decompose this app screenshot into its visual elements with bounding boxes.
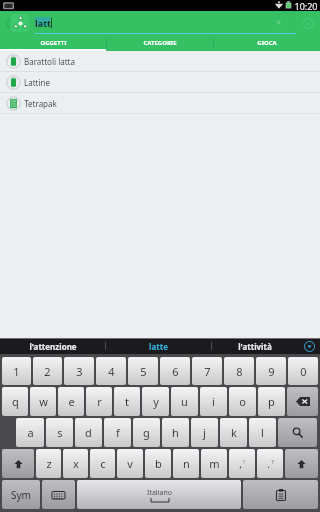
button[interactable]: Space	[77, 480, 241, 509]
button[interactable]: r	[86, 387, 112, 416]
staticText: ,	[239, 457, 242, 471]
staticText: 2	[44, 364, 51, 379]
staticText: Lattine	[24, 77, 50, 88]
button[interactable]: z	[36, 449, 61, 478]
button[interactable]: Clipboard	[243, 480, 318, 509]
button[interactable]: Tetrapak	[0, 93, 320, 113]
button[interactable]: c	[90, 449, 115, 478]
button[interactable]: Change keyboard	[42, 480, 75, 509]
staticText: q	[12, 394, 19, 409]
button[interactable]: m	[201, 449, 227, 478]
button[interactable]: 2	[33, 357, 62, 385]
button[interactable]: Shift	[2, 449, 34, 478]
staticText: l	[261, 425, 264, 440]
button[interactable]: Lattine	[0, 72, 320, 92]
staticText: 9	[268, 364, 275, 379]
staticText: OGGETTI	[40, 39, 67, 47]
staticText: g	[143, 425, 150, 440]
button[interactable]: p	[258, 387, 285, 416]
button[interactable]: App icon	[11, 14, 29, 32]
staticText: d	[85, 425, 92, 440]
staticText: 10:20	[294, 0, 318, 11]
button[interactable]: Info	[300, 15, 316, 31]
button[interactable]: GIOCA	[214, 34, 320, 51]
button[interactable]: f	[104, 418, 131, 447]
button[interactable]: i	[200, 387, 227, 416]
button[interactable]: 3	[64, 357, 94, 385]
button[interactable]: 4	[96, 357, 126, 385]
staticText: CATEGORIE	[143, 39, 177, 47]
button[interactable]: d	[75, 418, 102, 447]
button[interactable]: l	[249, 418, 276, 447]
button[interactable]: 7	[192, 357, 222, 385]
button[interactable]: 6	[160, 357, 190, 385]
button[interactable]: h	[162, 418, 189, 447]
staticText: y	[153, 394, 159, 409]
staticText: s	[57, 425, 63, 440]
staticText: b	[155, 456, 162, 471]
button[interactable]: latte	[106, 338, 211, 354]
staticText: latte	[149, 341, 168, 352]
staticText: Tetrapak	[24, 98, 57, 109]
button[interactable]: y	[142, 387, 169, 416]
staticText: !	[243, 458, 245, 466]
staticText: 3	[76, 364, 83, 379]
staticText: c	[100, 456, 106, 471]
staticText: e	[68, 394, 75, 409]
button[interactable]: n	[173, 449, 199, 478]
button[interactable]: Expand suggestions	[298, 338, 320, 354]
staticText: z	[46, 456, 52, 471]
staticText: m	[209, 456, 220, 471]
staticText: Barattoli latta	[24, 56, 75, 67]
button[interactable]: 0	[288, 357, 318, 385]
staticText: k	[231, 425, 237, 440]
staticText: 5	[140, 364, 147, 379]
button[interactable]: 5	[128, 357, 158, 385]
button[interactable]: 1	[2, 357, 31, 385]
button[interactable]: 9	[256, 357, 286, 385]
button[interactable]: CATEGORIE	[107, 34, 213, 51]
staticText: a	[27, 425, 34, 440]
staticText: o	[239, 394, 246, 409]
button[interactable]: v	[117, 449, 143, 478]
button[interactable]: b	[145, 449, 171, 478]
staticText: u	[181, 394, 188, 409]
button[interactable]: ,	[229, 449, 255, 478]
button[interactable]: Barattoli latta	[0, 51, 320, 71]
button[interactable]: j	[191, 418, 218, 447]
button[interactable]: Back	[4, 14, 11, 32]
staticText: p	[268, 394, 275, 409]
button[interactable]: o	[229, 387, 256, 416]
button[interactable]: Clear	[275, 19, 282, 26]
button[interactable]: g	[133, 418, 160, 447]
button[interactable]: Shift	[285, 449, 318, 478]
button[interactable]: w	[30, 387, 56, 416]
staticText: l'attività	[238, 341, 272, 352]
staticText: h	[172, 425, 179, 440]
staticText: latt	[35, 17, 51, 29]
button[interactable]: s	[46, 418, 73, 447]
button[interactable]: .	[257, 449, 283, 478]
button[interactable]: x	[63, 449, 88, 478]
button[interactable]: 8	[224, 357, 254, 385]
button[interactable]: OGGETTI	[0, 34, 106, 51]
button[interactable]: Search	[278, 418, 317, 447]
button[interactable]: q	[2, 387, 28, 416]
button[interactable]: a	[16, 418, 44, 447]
staticText: Sym	[11, 488, 31, 502]
staticText: 0	[300, 364, 307, 379]
button[interactable]: latt	[35, 11, 296, 34]
button[interactable]: l'attività	[212, 338, 298, 354]
staticText: w	[39, 394, 48, 409]
staticText: 6	[172, 364, 179, 379]
button[interactable]: Backspace	[287, 387, 318, 416]
button[interactable]: u	[171, 387, 198, 416]
button[interactable]: k	[220, 418, 247, 447]
button[interactable]: t	[114, 387, 140, 416]
button[interactable]: Symbols	[2, 480, 40, 509]
button[interactable]: l'attenzione	[0, 338, 105, 354]
staticText: j	[203, 425, 206, 440]
staticText: f	[116, 425, 120, 440]
staticText: r	[97, 394, 102, 409]
button[interactable]: e	[58, 387, 84, 416]
